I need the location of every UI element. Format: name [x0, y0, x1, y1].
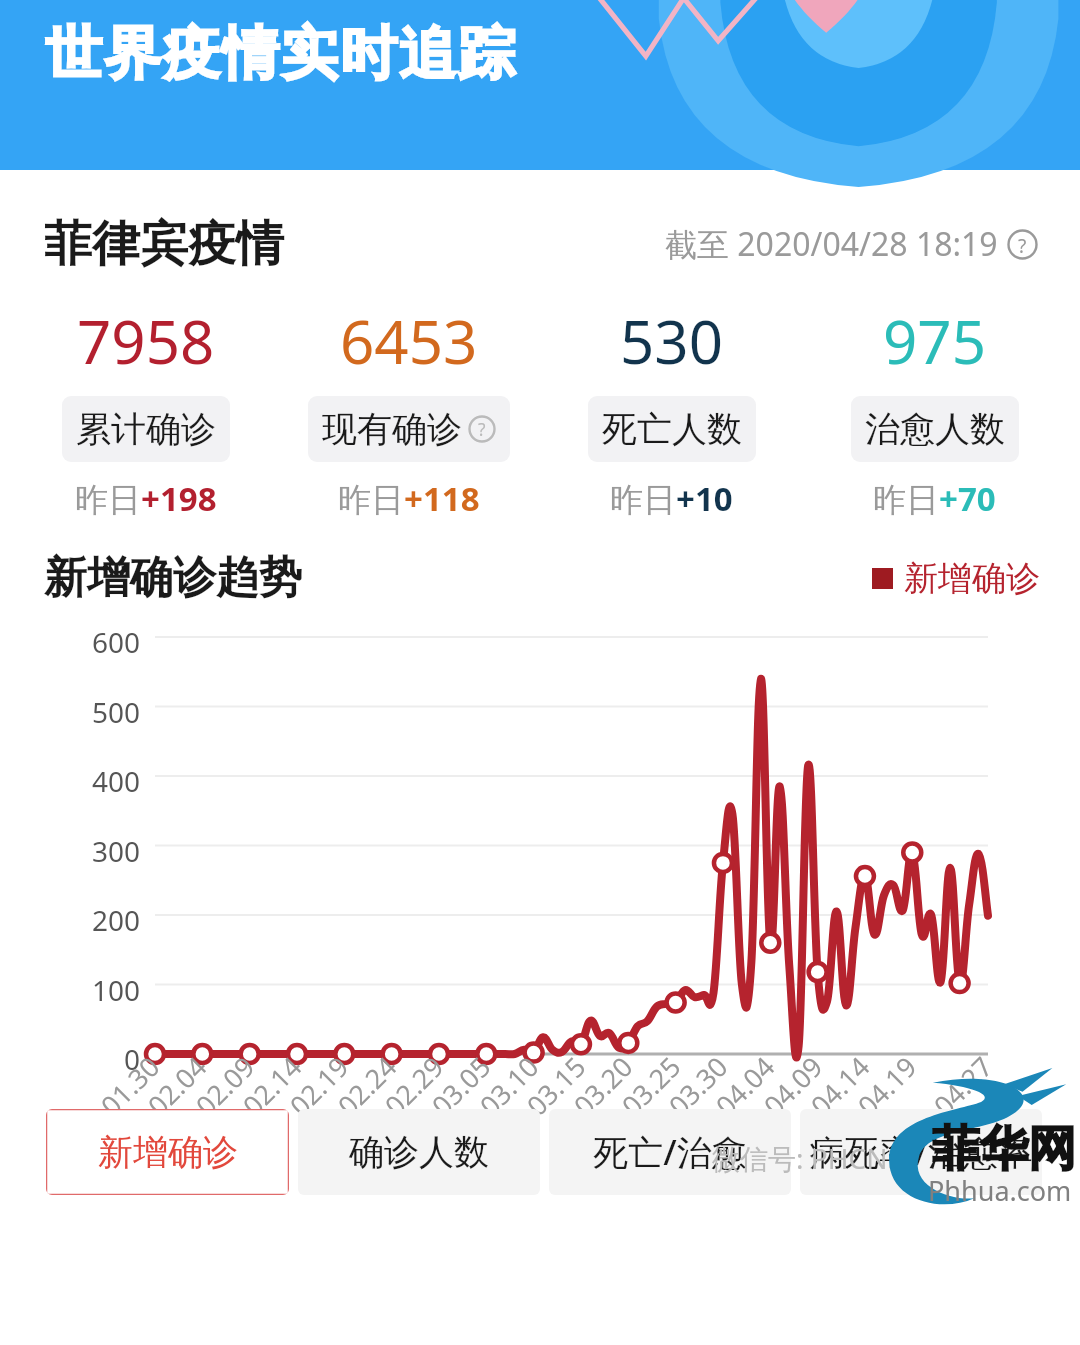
staticText: 400	[70, 762, 140, 800]
staticText: 04.19	[849, 1048, 925, 1123]
staticText: 600	[70, 623, 140, 661]
staticText: 300	[70, 832, 140, 870]
button[interactable]: 新增确诊	[872, 557, 1040, 600]
staticText: 03.20	[565, 1048, 641, 1123]
button[interactable]: 新增确诊	[46, 1109, 289, 1195]
staticText: 100	[70, 971, 140, 1009]
staticText: 03.05	[423, 1048, 499, 1123]
staticText: 累计确诊	[76, 407, 216, 451]
staticText: 治愈人数	[865, 407, 1005, 451]
staticText: 昨日+118	[338, 476, 480, 521]
staticText: 02.19	[281, 1048, 357, 1123]
staticText: 03.25	[613, 1048, 689, 1123]
staticText: 975	[883, 300, 986, 382]
button[interactable]: 数据说明	[1007, 229, 1038, 260]
staticText: 7958	[77, 300, 215, 382]
staticText: 04.04	[707, 1048, 783, 1123]
staticText: 确诊人数	[349, 1130, 489, 1174]
staticText: 微信号: PHCN...	[712, 1139, 910, 1177]
staticText: 02.09	[187, 1048, 263, 1123]
button[interactable]: 死亡/治愈	[549, 1109, 791, 1195]
staticText: 03.10	[471, 1048, 547, 1123]
staticText: 菲华网	[932, 1119, 1076, 1179]
staticText: 500	[70, 693, 140, 731]
staticText: 昨日+10	[610, 476, 733, 521]
staticText: 01.30	[92, 1048, 168, 1123]
staticText: 新增确诊	[904, 557, 1040, 600]
button[interactable]: 病死率/治愈率	[800, 1109, 1042, 1195]
staticText: 昨日+70	[873, 476, 996, 521]
staticText: 世界疫情实时追踪	[44, 18, 516, 90]
staticText: ?	[478, 417, 486, 441]
button[interactable]: 975	[803, 300, 1066, 521]
staticText: Phhua.com	[928, 1172, 1072, 1209]
staticText: 昨日+198	[75, 476, 217, 521]
staticText: 04.27	[925, 1048, 1001, 1123]
staticText: 6453	[340, 300, 478, 382]
button[interactable]: 530	[540, 300, 803, 521]
staticText: 死亡/治愈	[593, 1128, 747, 1176]
staticText: 02.04	[139, 1048, 215, 1123]
staticText: 现有确诊	[322, 407, 462, 451]
staticText: 死亡人数	[602, 407, 742, 451]
staticText: 04.14	[802, 1048, 878, 1123]
staticText: 病死率/治愈率	[809, 1128, 1033, 1176]
button[interactable]: 确诊人数	[298, 1109, 540, 1195]
staticText: 530	[620, 300, 723, 382]
staticText: 02.29	[376, 1048, 452, 1123]
staticText: 菲律宾疫情	[44, 214, 284, 274]
staticText: 截至 2020/04/28 18:19	[665, 222, 998, 266]
staticText: 04.09	[755, 1048, 831, 1123]
staticText: ?	[1018, 232, 1027, 258]
staticText: 0	[70, 1040, 140, 1078]
staticText: 03.15	[518, 1048, 594, 1123]
button[interactable]: 6453	[277, 300, 540, 521]
staticText: 200	[70, 901, 140, 939]
staticText: 02.14	[234, 1048, 310, 1123]
staticText: 02.24	[329, 1048, 405, 1123]
staticText: 03.30	[660, 1048, 736, 1123]
staticText: 新增确诊趋势	[44, 551, 302, 605]
staticText: 新增确诊	[98, 1130, 238, 1174]
button[interactable]: 7958	[14, 300, 277, 521]
